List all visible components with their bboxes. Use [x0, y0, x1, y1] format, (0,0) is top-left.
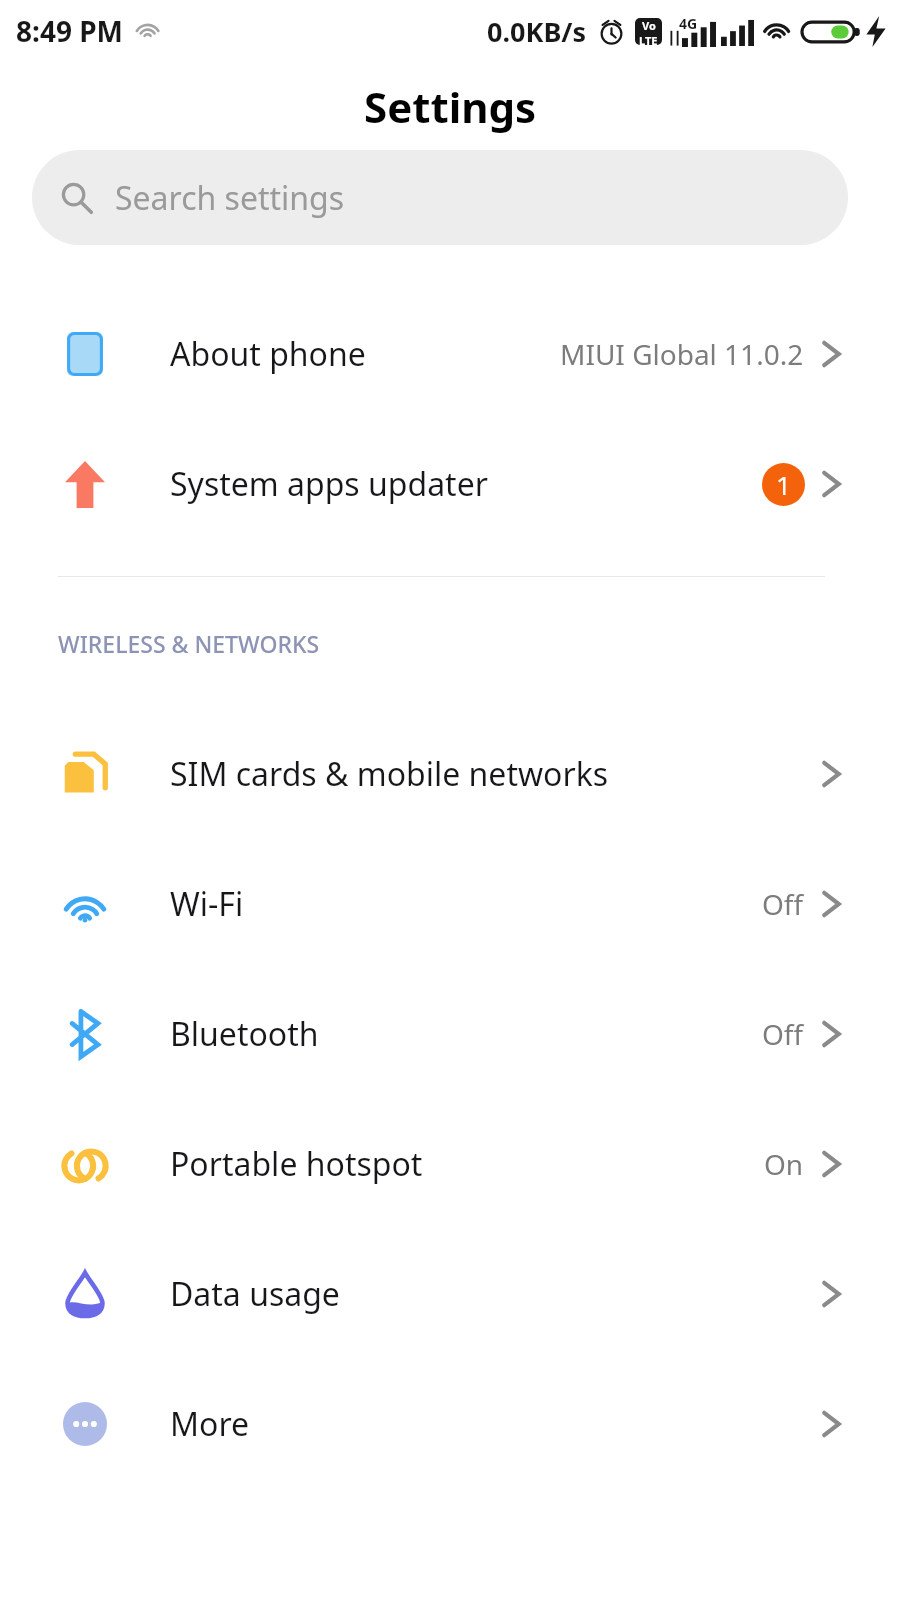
button[interactable]: Search settings — [32, 150, 848, 245]
other: Open System apps updater — [818, 467, 844, 501]
staticText: Search settings — [115, 176, 345, 220]
other: Open Portable hotspot — [818, 1147, 844, 1181]
staticText: Off — [762, 1015, 804, 1053]
button[interactable]: Data usage — [0, 1229, 900, 1359]
staticText: Wi-Fi — [170, 882, 762, 926]
button[interactable]: About phone — [0, 289, 900, 419]
staticText: Off — [762, 885, 804, 923]
button[interactable]: More — [0, 1359, 900, 1489]
staticText: Data usage — [170, 1272, 818, 1316]
staticText: About phone — [170, 332, 560, 376]
staticText: On — [764, 1145, 804, 1183]
staticText: Bluetooth — [170, 1012, 762, 1056]
staticText: SIM cards & mobile networks — [170, 752, 818, 796]
staticText: System apps updater — [170, 462, 762, 506]
button[interactable]: System apps updater — [0, 419, 900, 549]
staticText: Settings — [364, 78, 537, 135]
staticText: Portable hotspot — [170, 1142, 764, 1186]
other: Open About phone — [818, 337, 844, 371]
staticText: 4G — [679, 14, 698, 33]
staticText: More — [170, 1402, 818, 1446]
staticText: LTE — [639, 33, 658, 45]
staticText: WIRELESS & NETWORKS — [58, 628, 320, 659]
button[interactable]: Bluetooth — [0, 969, 900, 1099]
other: Open SIM cards & mobile networks — [818, 757, 844, 791]
other: Open More — [818, 1407, 844, 1441]
other: Open Data usage — [818, 1277, 844, 1311]
staticText: 0.0KB/s — [487, 13, 587, 50]
staticText: MIUI Global 11.0.2 — [560, 335, 804, 373]
staticText: 1 — [776, 467, 791, 502]
other: Open Wi-Fi — [818, 887, 844, 921]
button[interactable]: Wi-Fi — [0, 839, 900, 969]
other: Open Bluetooth — [818, 1017, 844, 1051]
button[interactable]: Portable hotspot — [0, 1099, 900, 1229]
staticText: Vo — [642, 18, 656, 33]
button[interactable]: SIM cards & mobile networks — [0, 709, 900, 839]
staticText: 8:49 PM — [16, 12, 123, 50]
